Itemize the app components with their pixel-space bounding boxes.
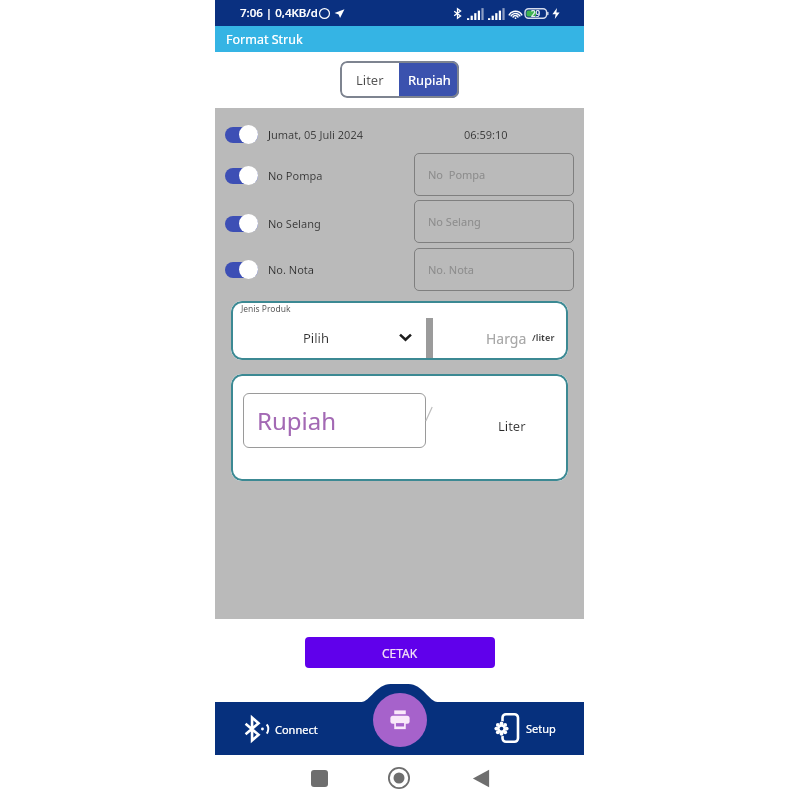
button[interactable]: Rupiah: [399, 61, 459, 98]
staticText: 29: [531, 8, 541, 19]
staticText: Connect: [275, 722, 318, 737]
button[interactable]: Pilih: [233, 315, 425, 358]
button[interactable]: No Pompa: [225, 166, 258, 185]
button[interactable]: Tanggal: [225, 125, 258, 144]
staticText: No Selang: [428, 214, 481, 229]
staticText: Setup: [526, 721, 556, 736]
staticText: 7:06 | 0,4KB/d: [240, 5, 318, 21]
staticText: No Pompa: [428, 167, 486, 182]
button[interactable]: No Selang: [414, 200, 574, 243]
button[interactable]: No Pompa: [414, 153, 574, 196]
button[interactable]: Bluetooth: [244, 716, 318, 742]
button[interactable]: Back: [472, 769, 490, 788]
button[interactable]: No. Nota: [414, 248, 574, 291]
staticText: Liter: [498, 417, 526, 435]
staticText: Jenis Produk: [241, 303, 291, 315]
staticText: Rupiah: [257, 404, 337, 437]
button[interactable]: Rupiah: [243, 393, 426, 448]
staticText: Liter: [356, 71, 384, 89]
button[interactable]: Home: [388, 767, 410, 789]
staticText: No. Nota: [428, 262, 474, 277]
button[interactable]: Setup: [496, 713, 556, 743]
staticText: Harga: [486, 329, 527, 348]
button[interactable]: Print: [373, 693, 427, 747]
staticText: No Pompa: [268, 168, 323, 183]
button[interactable]: Liter: [340, 61, 399, 98]
other: Bluetooth: [244, 716, 270, 742]
staticText: No. Nota: [268, 262, 314, 277]
button[interactable]: No Selang: [225, 214, 258, 233]
staticText: Rupiah: [408, 71, 451, 89]
button[interactable]: Liter: [440, 393, 565, 448]
button[interactable]: CETAK: [305, 637, 495, 668]
staticText: Pilih: [303, 329, 329, 347]
button[interactable]: No. Nota: [225, 260, 258, 279]
staticText: CETAK: [382, 645, 418, 661]
other: Expand: [399, 331, 412, 343]
button[interactable]: Harga: [437, 315, 565, 358]
staticText: No Selang: [268, 216, 321, 231]
staticText: Format Struk: [226, 31, 303, 48]
staticText: 06:59:10: [464, 127, 508, 142]
other: Setup: [496, 713, 521, 743]
staticText: Jumat, 05 Juli 2024: [268, 127, 363, 142]
staticText: /liter: [532, 331, 555, 343]
button[interactable]: Recents: [311, 770, 328, 787]
